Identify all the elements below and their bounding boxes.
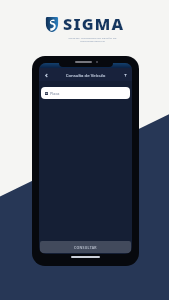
staticText: CONSULTAR <box>74 245 97 250</box>
button[interactable]: Back <box>42 71 50 79</box>
staticText: Placa <box>50 91 60 96</box>
button[interactable]: Placa <box>41 87 130 99</box>
staticText: Consulta de Veículo <box>50 72 121 78</box>
staticText: SISTEMA INTEGRADO DE GESTÃO DE MONITORAM… <box>63 36 122 42</box>
button[interactable]: CONSULTAR <box>40 241 131 253</box>
button[interactable]: Filter <box>121 71 129 79</box>
staticText: SIGMA <box>63 13 125 35</box>
